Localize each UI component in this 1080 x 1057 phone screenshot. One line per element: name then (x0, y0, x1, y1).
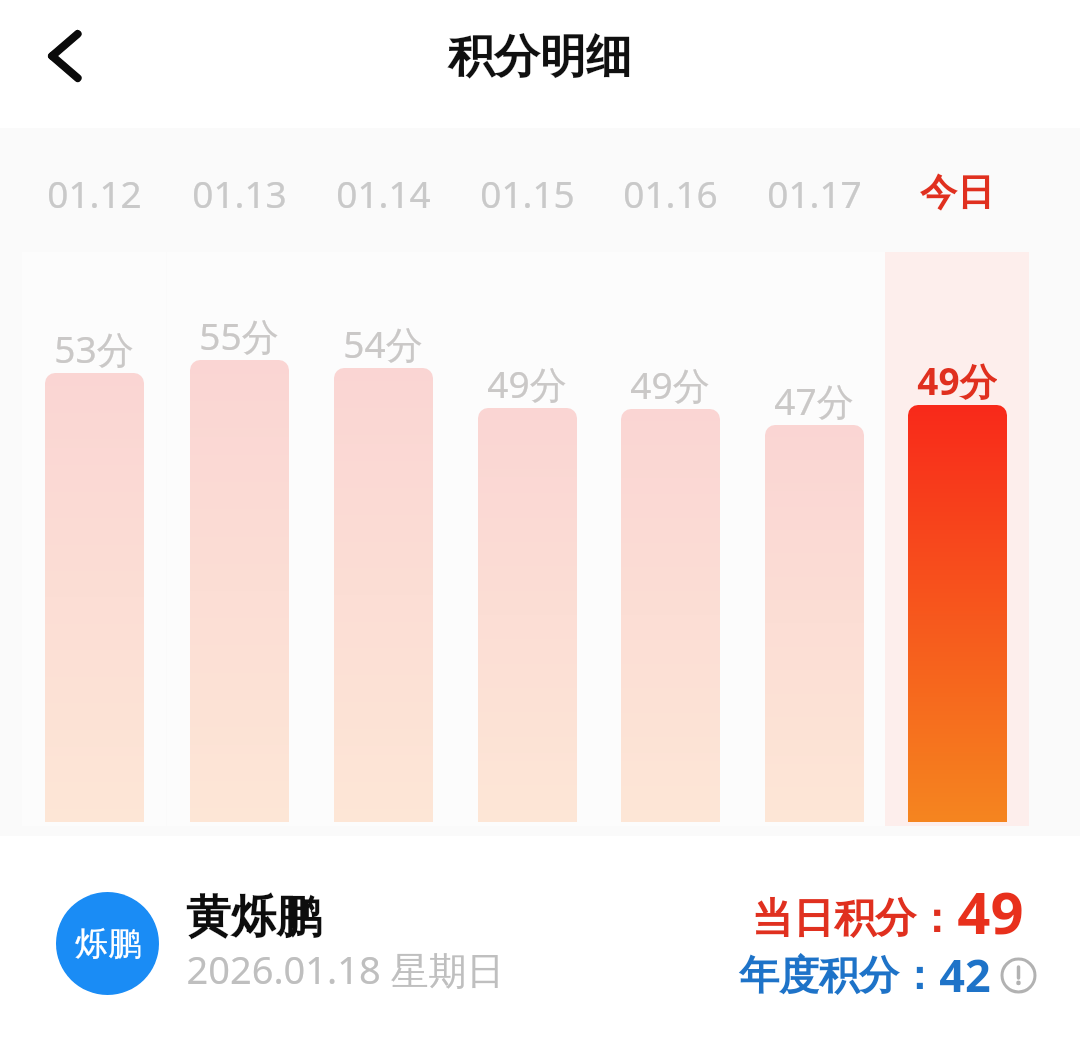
button[interactable] (22, 252, 166, 826)
staticText: 黄烁鹏 (186, 889, 321, 946)
staticText: 2026.01.18 星期日 (186, 943, 505, 995)
staticText: 54分 (343, 318, 423, 366)
button[interactable]: Info (998, 955, 1038, 995)
button[interactable] (167, 252, 311, 826)
staticText: 01.13 (192, 168, 287, 216)
button[interactable]: 当日积分： (0, 872, 1024, 951)
staticText: 49分 (487, 358, 567, 406)
staticText: 年度积分： (739, 950, 939, 1000)
staticText: 55分 (199, 310, 279, 358)
button[interactable] (455, 252, 599, 826)
staticText: 49分 (917, 355, 997, 403)
staticText: 53分 (54, 323, 134, 371)
staticText: 01.14 (336, 168, 431, 216)
staticText: 今日 (920, 169, 994, 216)
button[interactable] (885, 252, 1029, 826)
button[interactable] (598, 252, 742, 826)
button[interactable] (311, 252, 455, 826)
staticText: 49 (957, 872, 1024, 951)
staticText: 01.12 (47, 168, 142, 216)
staticText: 01.16 (623, 168, 718, 216)
button[interactable] (742, 252, 886, 826)
staticText: 当日积分： (752, 893, 957, 945)
button[interactable]: 年度积分： (0, 944, 1038, 1005)
button[interactable]: Back (20, 10, 112, 102)
staticText: 01.15 (480, 168, 575, 216)
staticText: 49分 (630, 359, 710, 407)
staticText: 烁鹏 (75, 923, 141, 965)
staticText: 47分 (774, 375, 854, 423)
button[interactable]: 烁鹏 (56, 892, 505, 995)
staticText: 42 (939, 944, 991, 1005)
staticText: 积分明细 (448, 28, 632, 86)
staticText: 01.17 (767, 168, 862, 216)
